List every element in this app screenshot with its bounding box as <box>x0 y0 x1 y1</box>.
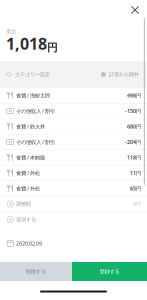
button[interactable]: カテゴリー設定 <box>6 65 50 84</box>
staticText: 追加する <box>16 216 36 223</box>
staticText: -204円 <box>125 138 141 146</box>
button[interactable]: 食費 / 海鮮太郎 <box>0 88 147 103</box>
button[interactable]: 食費 / 外松 <box>0 165 147 181</box>
button[interactable]: その他収入 / 割引 <box>0 134 147 150</box>
button[interactable]: Close <box>126 1 144 19</box>
staticText: 食費 / 外松 <box>16 185 40 192</box>
button[interactable]: 2020.02.09 <box>0 236 147 250</box>
button[interactable]: 計算から除外 <box>101 65 139 84</box>
staticText: 0円 <box>133 200 141 208</box>
button[interactable]: 食費 / 本鮪腹 <box>0 150 147 165</box>
staticText: 食費 / 鉄火丼 <box>16 123 45 130</box>
button[interactable]: 調整額 <box>0 196 147 212</box>
staticText: 登録する <box>99 268 119 275</box>
staticText: 削除する <box>26 268 46 275</box>
staticText: 食費 / 海鮮太郎 <box>16 92 50 99</box>
staticText: 11円 <box>130 169 141 177</box>
staticText: -150円 <box>125 107 141 115</box>
staticText: カテゴリー設定 <box>15 71 50 78</box>
staticText: 支出 <box>6 28 16 35</box>
button[interactable]: 追加する <box>0 212 147 227</box>
staticText: 2020.02.09 <box>16 240 42 247</box>
staticText: 円 <box>47 41 58 54</box>
staticText: その他収入 / 割引 <box>16 107 55 115</box>
staticText: 食費 / 本鮪腹 <box>16 154 45 161</box>
staticText: 食費 / 外松 <box>16 169 40 177</box>
staticText: その他収入 / 割引 <box>16 138 55 146</box>
button[interactable]: 登録する <box>72 262 147 281</box>
button[interactable]: 食費 / 外松 <box>0 181 147 196</box>
staticText: 計算から除外 <box>109 71 139 78</box>
staticText: 65円 <box>130 185 141 192</box>
staticText: 1,018 <box>6 33 47 54</box>
staticText: 680円 <box>127 123 141 130</box>
button[interactable]: その他収入 / 割引 <box>0 103 147 119</box>
staticText: 調整額 <box>16 201 31 207</box>
staticText: 118円 <box>127 154 141 161</box>
button[interactable]: 削除する <box>0 262 72 281</box>
button[interactable]: 食費 / 鉄火丼 <box>0 119 147 134</box>
staticText: 498円 <box>127 92 141 99</box>
